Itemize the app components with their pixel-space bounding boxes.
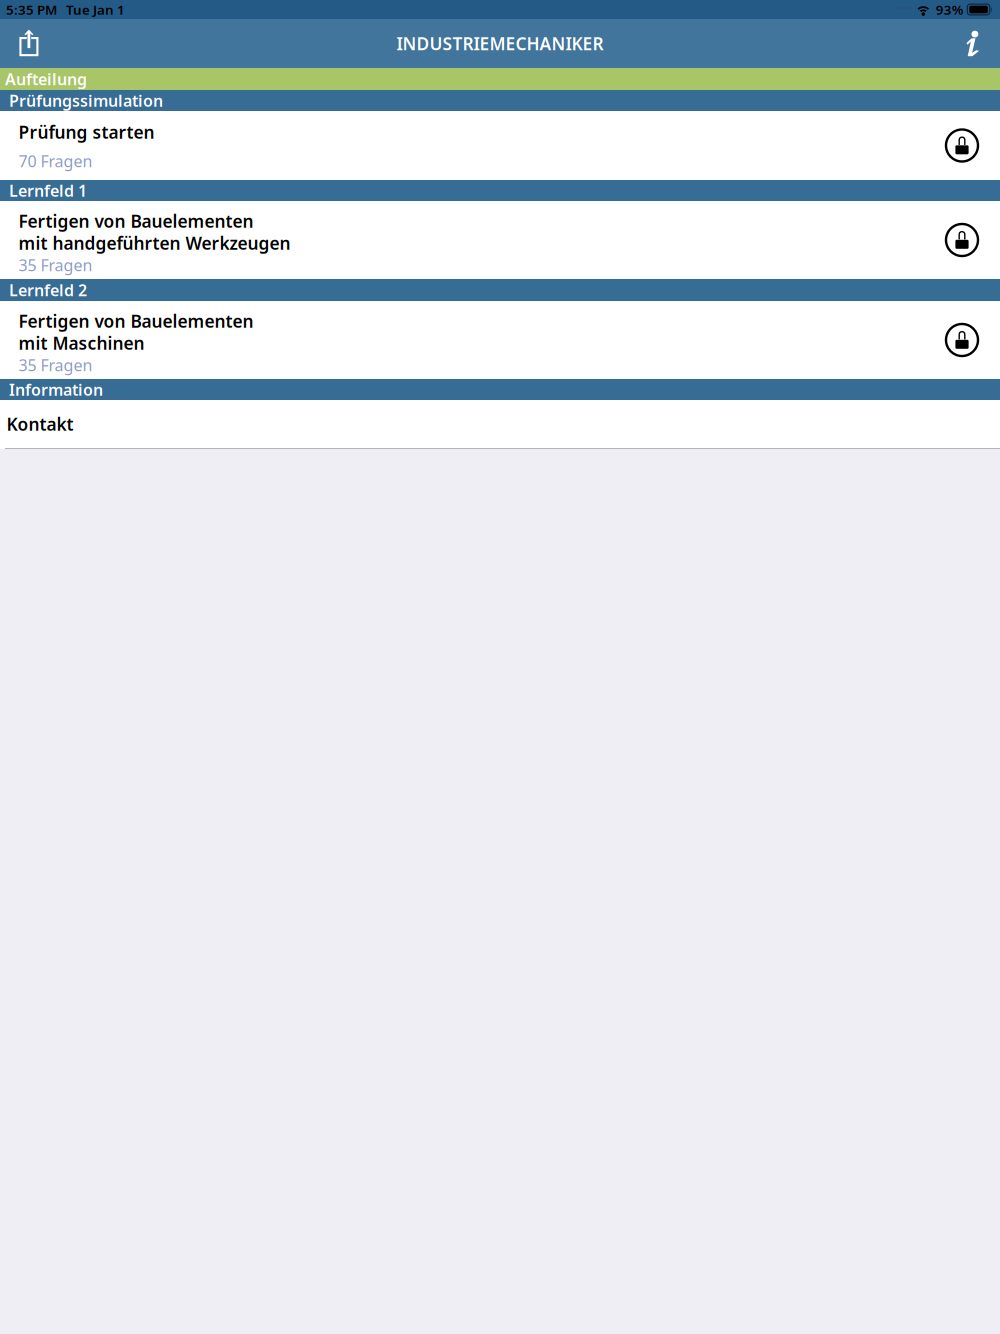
staticText: 5:35 PM (6, 1, 57, 18)
staticText: Prüfungssimulation (9, 90, 163, 111)
staticText: 35 Fragen (18, 254, 92, 276)
staticText: Fertigen von Bauelementen (18, 309, 253, 332)
staticText: INDUSTRIEMECHANIKER (396, 32, 603, 55)
button[interactable]: Prüfung starten (0, 111, 1000, 180)
staticText: Aufteilung (5, 68, 87, 90)
staticText: 70 Fragen (18, 150, 92, 172)
staticText: mit handgeführten Werkzeugen (18, 231, 290, 254)
staticText: Kontakt (6, 412, 73, 435)
staticText: mit Maschinen (18, 331, 144, 354)
staticText: Lernfeld 1 (9, 180, 87, 201)
staticText: Lernfeld 2 (9, 279, 87, 301)
button[interactable]: Fertigen von Bauelementen (0, 201, 1000, 279)
staticText: Prüfung starten (18, 120, 154, 143)
staticText: Tue Jan 1 (66, 1, 125, 18)
button[interactable]: Information (951, 19, 995, 68)
button[interactable]: Share (7, 19, 51, 68)
button[interactable]: Kontakt (0, 400, 1000, 448)
staticText: Fertigen von Bauelementen (18, 209, 253, 232)
staticText: 35 Fragen (18, 354, 92, 376)
staticText: 93% (936, 1, 964, 18)
button[interactable]: Fertigen von Bauelementen (0, 301, 1000, 379)
staticText: Information (9, 379, 103, 400)
